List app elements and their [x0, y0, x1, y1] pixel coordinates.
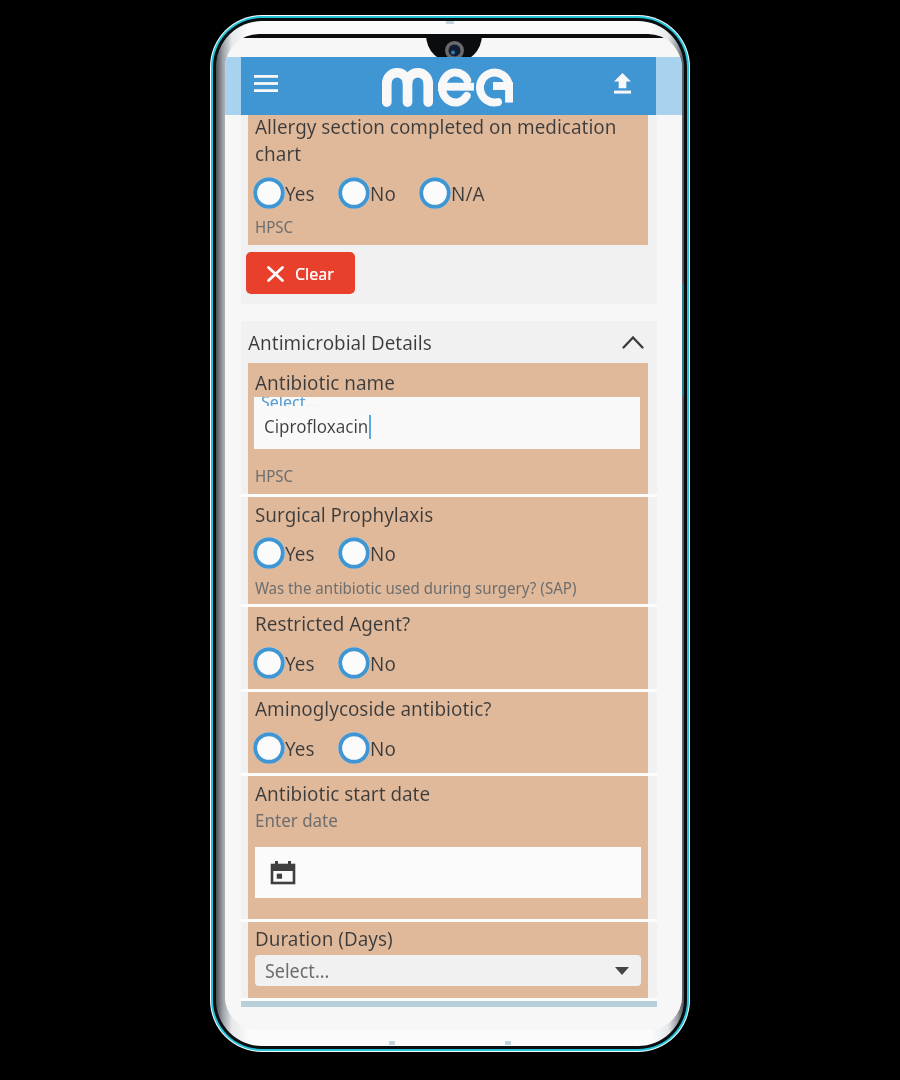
staticText: Yes: [285, 540, 315, 567]
button[interactable]: Clear: [246, 252, 355, 294]
staticText: Clear: [295, 262, 334, 285]
staticText: Select...: [261, 397, 319, 406]
staticText: Antibiotic name: [255, 369, 395, 396]
staticText: No: [370, 650, 396, 677]
staticText: Surgical Prophylaxis: [255, 501, 434, 528]
staticText: Ciprofloxacin: [264, 414, 369, 439]
staticText: Aminoglycoside antibiotic?: [255, 695, 492, 722]
button[interactable]: No: [338, 647, 396, 679]
staticText: Allergy section completed on medication …: [255, 113, 617, 167]
button[interactable]: No: [338, 537, 396, 569]
button[interactable]: Yes: [253, 732, 315, 764]
staticText: No: [370, 540, 396, 567]
staticText: Yes: [285, 180, 315, 207]
staticText: Select...: [265, 958, 330, 984]
button[interactable]: Menu: [238, 54, 294, 112]
staticText: HPSC: [255, 216, 294, 238]
staticText: Antimicrobial Details: [248, 329, 432, 356]
staticText: No: [370, 735, 396, 762]
staticText: No: [370, 180, 396, 207]
staticText: Yes: [285, 650, 315, 677]
staticText: Enter date: [255, 808, 338, 833]
staticText: Antibiotic start date: [255, 780, 431, 807]
staticText: Yes: [285, 735, 315, 762]
button[interactable]: Pick date: [255, 847, 641, 898]
button[interactable]: Antimicrobial Details: [241, 321, 657, 363]
button[interactable]: Yes: [253, 177, 315, 209]
staticText: N/A: [451, 180, 485, 207]
button[interactable]: No: [338, 732, 396, 764]
staticText: Was the antibiotic used during surgery? …: [255, 577, 577, 599]
button[interactable]: N/A: [419, 177, 485, 209]
button[interactable]: Upload: [600, 61, 644, 105]
staticText: Restricted Agent?: [255, 610, 411, 637]
button[interactable]: Select...: [254, 397, 640, 449]
button[interactable]: Select...: [255, 955, 641, 986]
staticText: Duration (Days): [255, 925, 393, 952]
button[interactable]: Yes: [253, 537, 315, 569]
staticText: HPSC: [255, 465, 294, 487]
button[interactable]: Yes: [253, 647, 315, 679]
button[interactable]: No: [338, 177, 396, 209]
